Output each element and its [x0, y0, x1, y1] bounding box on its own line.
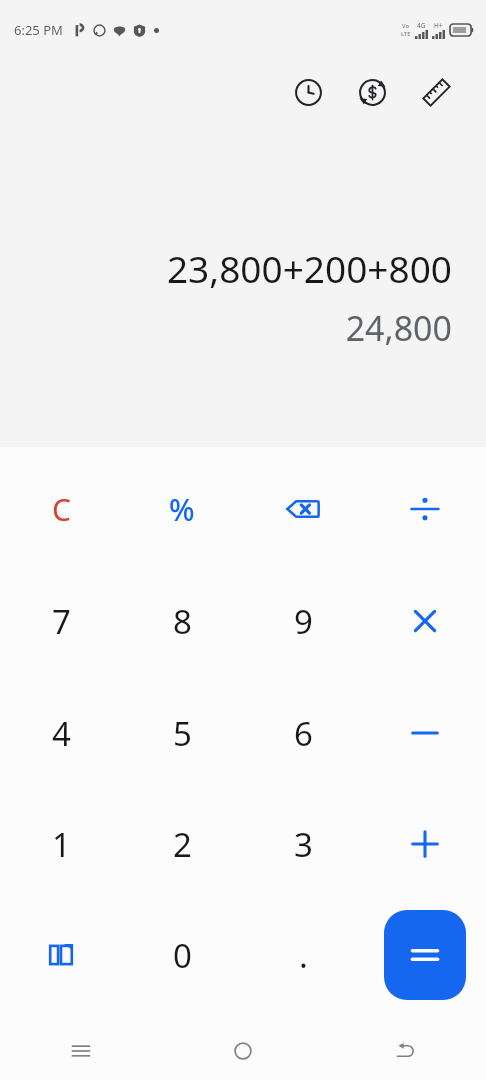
staticText: 2 — [173, 822, 192, 867]
staticText: H+ — [434, 21, 443, 30]
staticText: 4 — [52, 711, 71, 756]
staticText: 23,800+200+800 — [166, 243, 452, 293]
staticText: 7 — [52, 599, 71, 644]
staticText: C — [52, 489, 71, 530]
button[interactable]: Back — [324, 1022, 486, 1080]
button[interactable]: 2 — [139, 801, 225, 887]
button[interactable]: 4 — [18, 690, 104, 776]
button[interactable]: Minus — [382, 690, 468, 776]
button[interactable]: 8 — [139, 578, 225, 664]
staticText: 0 — [173, 933, 192, 978]
staticText: . — [299, 933, 308, 978]
button[interactable]: History — [282, 66, 334, 118]
button[interactable]: Currency converter — [346, 66, 398, 118]
staticText: 6:25 PM — [14, 21, 63, 39]
button[interactable]: C — [18, 466, 104, 552]
button[interactable]: Home — [162, 1022, 324, 1080]
button[interactable]: Plus — [382, 801, 468, 887]
staticText: 5 — [173, 711, 192, 756]
button[interactable]: Unit converter — [410, 66, 462, 118]
button[interactable]: 9 — [260, 578, 346, 664]
staticText: % — [169, 489, 195, 530]
button[interactable]: Backspace — [260, 466, 346, 552]
button[interactable]: % — [139, 466, 225, 552]
button[interactable]: Scientific mode — [18, 912, 104, 998]
button[interactable]: 3 — [260, 801, 346, 887]
button[interactable]: 7 — [18, 578, 104, 664]
button[interactable]: Equals — [384, 910, 466, 1000]
button[interactable]: 0 — [139, 912, 225, 998]
staticText: LTE — [401, 30, 411, 38]
button[interactable]: 6 — [260, 690, 346, 776]
button[interactable]: 5 — [139, 690, 225, 776]
staticText: 9 — [294, 599, 313, 644]
staticText: 1 — [52, 822, 71, 867]
button[interactable]: Multiply — [382, 578, 468, 664]
button[interactable]: Recent apps — [0, 1022, 162, 1080]
staticText: 3 — [294, 822, 313, 867]
staticText: 24,800 — [345, 305, 452, 351]
staticText: Vo — [402, 22, 410, 30]
staticText: 6 — [294, 711, 313, 756]
button[interactable]: 1 — [18, 801, 104, 887]
staticText: 4G — [417, 21, 426, 30]
button[interactable]: Divide — [382, 466, 468, 552]
staticText: 8 — [173, 599, 192, 644]
button[interactable]: . — [260, 912, 346, 998]
